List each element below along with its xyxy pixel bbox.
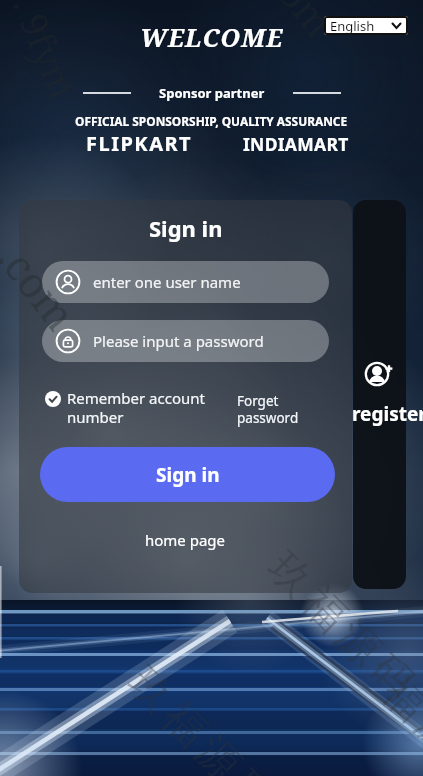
staticText: .com (0, 231, 90, 342)
staticText: Sign in (156, 462, 220, 488)
staticText: 福源 (371, 665, 423, 765)
staticText: enter one user name (93, 272, 241, 292)
staticText: WELCOME (140, 20, 284, 54)
button[interactable]: Forget password (237, 392, 299, 427)
staticText: Please input a password (93, 331, 264, 351)
staticText: INDIAMART (243, 132, 349, 156)
staticText: Remember account number (67, 388, 237, 427)
staticText: Sponsor partner (159, 84, 265, 102)
button[interactable]: Sign in (40, 447, 335, 502)
button[interactable]: Please input a password (42, 320, 329, 362)
staticText: register (352, 401, 423, 427)
button[interactable]: English (324, 16, 408, 35)
staticText: 玖福源码 (254, 540, 423, 713)
button[interactable]: home page (145, 530, 226, 550)
staticText: English (330, 17, 375, 35)
staticText: Sign in (149, 213, 223, 243)
staticText: om (269, 0, 345, 47)
button[interactable] (353, 200, 406, 589)
button[interactable]: enter one user name (42, 261, 329, 303)
button[interactable]: Remember account number (45, 388, 237, 427)
staticText: FLIPKART (86, 130, 193, 157)
staticText: OFFICIAL SPONSORSHIP, QUALITY ASSURANCE (75, 113, 348, 129)
staticText: 玖福源码 (114, 655, 288, 776)
staticText: w. 9fym (0, 0, 87, 106)
